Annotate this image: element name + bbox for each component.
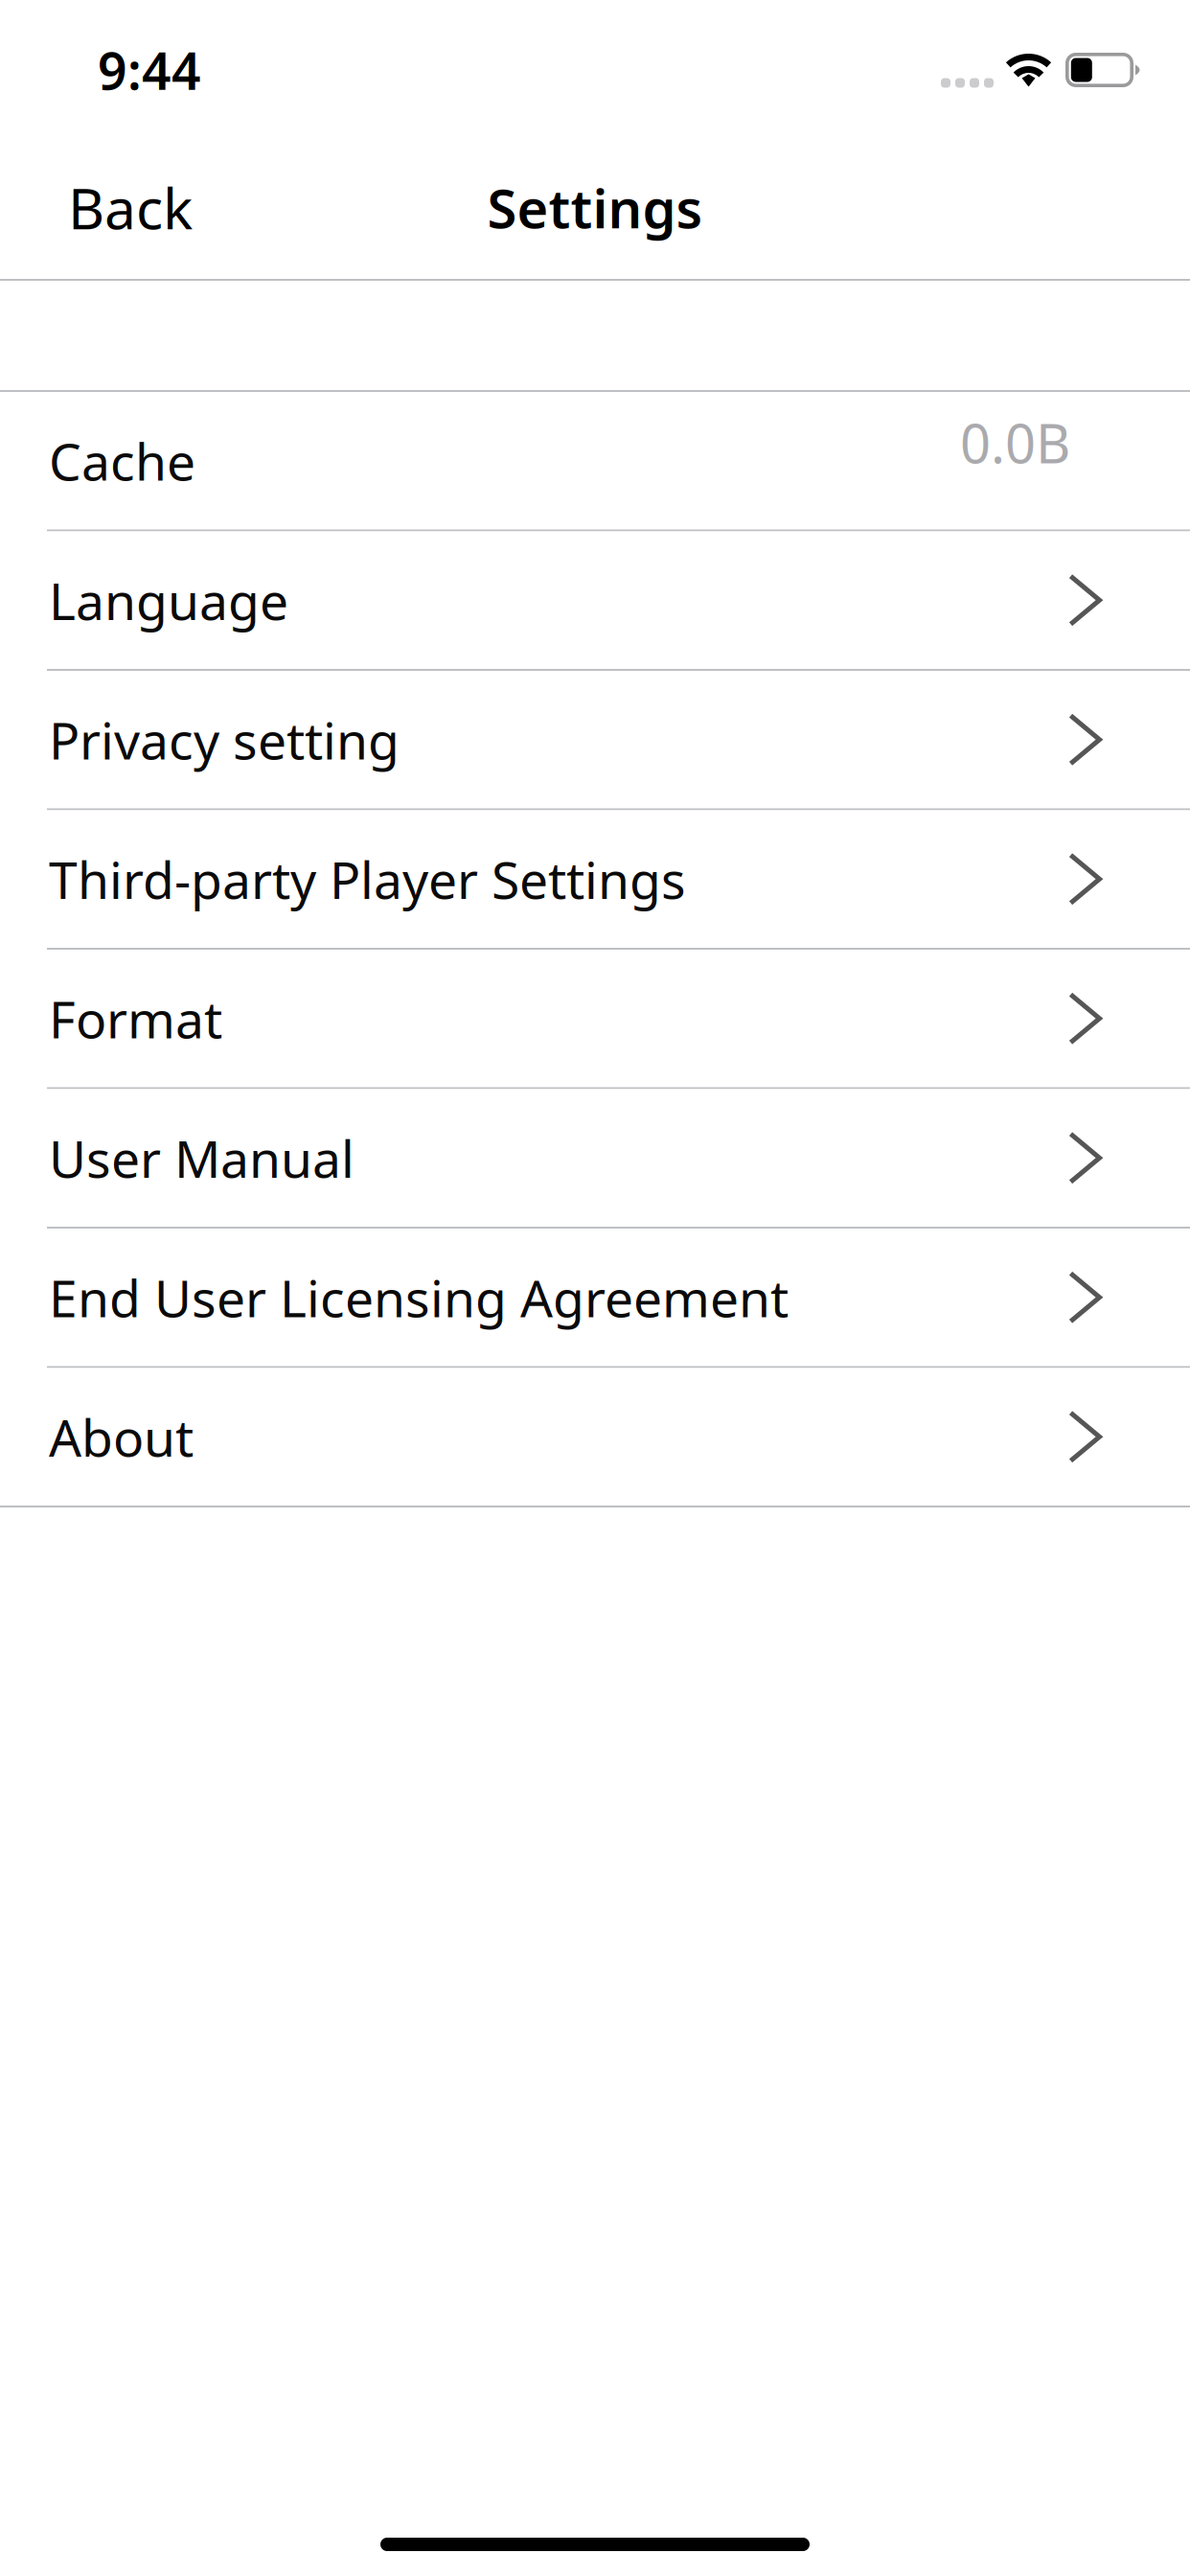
staticText: Format (49, 984, 222, 1052)
button[interactable]: Format (0, 950, 1190, 1089)
button[interactable]: Back (0, 155, 221, 260)
staticText: End User Licensing Agreement (49, 1263, 789, 1331)
staticText: Third-party Player Settings (49, 845, 686, 913)
staticText: User Manual (49, 1124, 355, 1192)
staticText: 0.0B (960, 407, 1070, 478)
staticText: About (49, 1403, 194, 1471)
staticText: Cache (49, 427, 195, 495)
staticText: Privacy setting (49, 706, 400, 773)
button[interactable]: Language (0, 531, 1190, 671)
button[interactable]: Third-party Player Settings (0, 810, 1190, 950)
button[interactable]: End User Licensing Agreement (0, 1229, 1190, 1368)
button[interactable]: User Manual (0, 1089, 1190, 1229)
staticText: Back (68, 170, 193, 245)
button[interactable]: Privacy setting (0, 671, 1190, 810)
staticText: Settings (487, 172, 703, 243)
staticText: 9:44 (98, 36, 201, 104)
button[interactable]: About (0, 1368, 1190, 1507)
staticText: Language (49, 566, 288, 634)
button[interactable]: Cache (0, 392, 1190, 531)
